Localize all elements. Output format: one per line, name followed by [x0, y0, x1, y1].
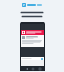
button[interactable]: App logo [20, 2, 44, 8]
button[interactable]: Send [21, 57, 44, 60]
button[interactable]: Alert [21, 30, 44, 35]
other: Alert [22, 31, 25, 34]
other: App logo [22, 3, 26, 7]
button[interactable] [21, 35, 44, 47]
button[interactable]: Back [25, 67, 28, 70]
button[interactable]: Recent apps [38, 67, 41, 70]
button[interactable]: Home [31, 67, 34, 70]
